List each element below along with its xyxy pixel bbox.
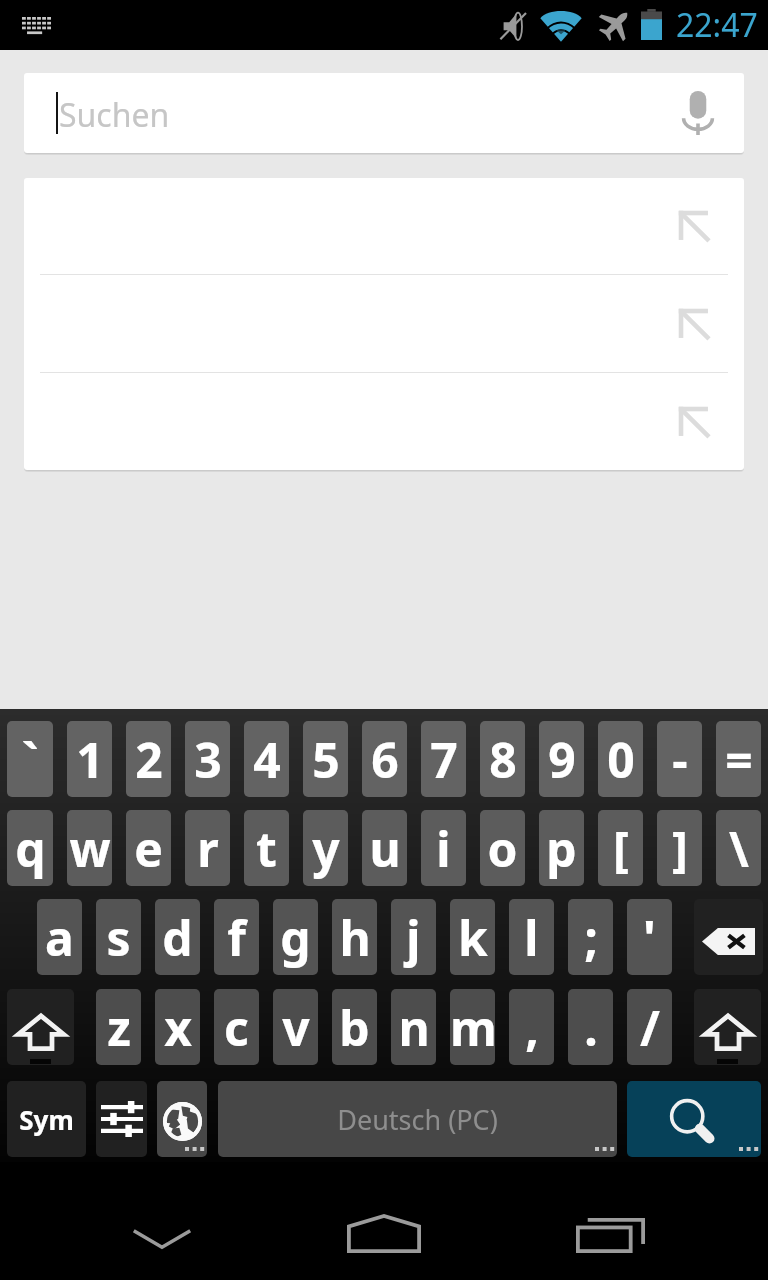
button[interactable]: v [273,989,318,1065]
staticText: . [584,995,598,1060]
button[interactable]: 3 [185,721,230,797]
staticText: h [339,905,371,970]
button[interactable]: w [67,810,112,886]
staticText: 0 [607,727,635,792]
button[interactable]: - [657,721,702,797]
staticText: \ [729,816,749,881]
button[interactable]: r [185,810,230,886]
staticText: Deutsch (PC) [337,1101,498,1138]
button[interactable]: ; [568,899,613,975]
button[interactable]: Voice search [652,73,744,153]
button[interactable]: 2 [126,721,171,797]
button[interactable]: f [214,899,259,975]
button[interactable]: Sym [7,1081,86,1157]
button[interactable]: x [155,989,200,1065]
button[interactable]: n [391,989,436,1065]
button[interactable]: Use suggestion [641,178,744,274]
staticText: v [282,995,310,1060]
staticText: Sym [19,1102,74,1137]
staticText: 5 [312,727,340,792]
button[interactable]: e [126,810,171,886]
button[interactable]: g [273,899,318,975]
staticText: / [640,995,660,1060]
button[interactable]: Search [627,1081,761,1157]
button[interactable]: k [450,899,495,975]
staticText: c [224,995,249,1060]
button[interactable]: [ [598,810,643,886]
button[interactable]: a [37,899,82,975]
button[interactable]: / [627,989,672,1065]
staticText: 8 [489,727,517,792]
button[interactable]: 5 [303,721,348,797]
staticText: ] [672,816,688,881]
button[interactable]: m [450,989,495,1065]
staticText: i [436,816,451,881]
button[interactable]: o [480,810,525,886]
button[interactable]: Deutsch (PC) [218,1081,617,1157]
button[interactable]: ` [7,721,53,797]
button[interactable]: ' [627,899,672,975]
staticText: 3 [194,727,222,792]
staticText: e [134,816,163,881]
button[interactable]: . [568,989,613,1065]
button[interactable]: y [303,810,348,886]
staticText: j [406,905,421,970]
button[interactable]: , [509,989,554,1065]
staticText: p [546,816,577,881]
button[interactable]: c [214,989,259,1065]
button[interactable]: l [509,899,554,975]
button[interactable]: ] [657,810,702,886]
button[interactable]: b [332,989,377,1065]
button[interactable]: 0 [598,721,643,797]
button[interactable]: Suchen [24,73,744,153]
button[interactable]: t [244,810,289,886]
button[interactable]: j [391,899,436,975]
staticText: 6 [371,727,399,792]
button[interactable]: Shift [694,989,761,1065]
staticText: m [450,995,495,1060]
button[interactable]: = [716,721,761,797]
staticText: l [524,905,539,970]
staticText: o [487,816,518,881]
button[interactable]: u [362,810,407,886]
button[interactable]: 6 [362,721,407,797]
button[interactable]: s [96,899,141,975]
staticText: ' [643,905,656,970]
button[interactable]: Recent apps [550,1162,670,1280]
staticText: Suchen [59,93,170,137]
button[interactable]: Use suggestion [641,373,744,470]
staticText: f [227,905,246,970]
staticText: s [106,905,131,970]
button[interactable]: Use suggestion [641,275,744,372]
button[interactable]: 1 [67,721,112,797]
button[interactable]: Backspace [694,899,763,975]
button[interactable]: p [539,810,584,886]
button[interactable]: Keyboard settings [96,1081,147,1157]
button[interactable]: Change language [157,1081,207,1157]
staticText: 9 [548,727,576,792]
staticText: k [458,905,488,970]
button[interactable]: z [96,989,141,1065]
button[interactable]: \ [716,810,761,886]
button[interactable]: 7 [421,721,466,797]
staticText: - [672,727,688,792]
button[interactable]: 4 [244,721,289,797]
staticText: g [280,905,311,970]
staticText: y [312,816,340,881]
button[interactable]: Home [324,1162,444,1280]
button[interactable]: Shift [7,989,74,1065]
staticText: d [162,905,193,970]
staticText: 1 [76,727,104,792]
button[interactable]: d [155,899,200,975]
button[interactable]: 9 [539,721,584,797]
staticText: r [197,816,219,881]
staticText: q [15,816,46,881]
button[interactable]: i [421,810,466,886]
button[interactable]: q [7,810,53,886]
button[interactable]: Hide keyboard [102,1162,222,1280]
button[interactable]: 8 [480,721,525,797]
button[interactable]: h [332,899,377,975]
